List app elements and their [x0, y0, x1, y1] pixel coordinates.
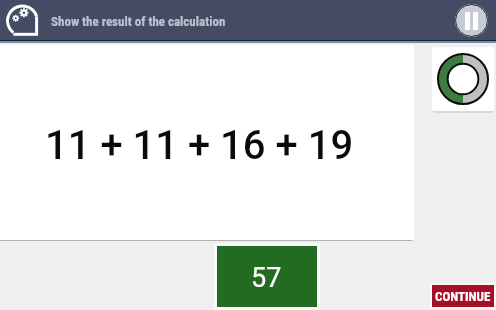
staticText: Show the result of the calculation	[51, 14, 226, 29]
button[interactable]: Pause	[455, 4, 488, 37]
staticText: CONTINUE	[435, 289, 491, 304]
button[interactable]: CONTINUE	[432, 285, 494, 307]
button[interactable]: 57	[217, 246, 317, 307]
button[interactable]: Brain training	[6, 5, 41, 40]
staticText: 57	[251, 262, 282, 294]
staticText: 11 + 11 + 16 + 19	[45, 122, 354, 169]
